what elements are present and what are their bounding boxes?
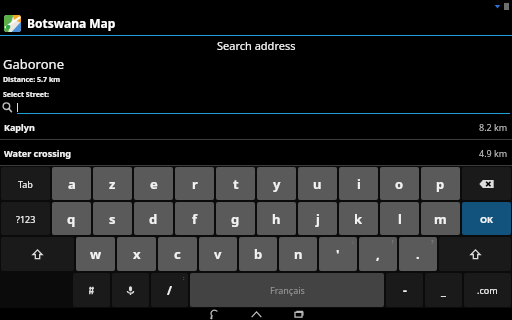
staticText: Water crossing [4, 147, 479, 159]
staticText: s [109, 210, 116, 228]
staticText: y [273, 175, 281, 193]
button[interactable]: Voice input [112, 273, 149, 307]
staticText: : [352, 238, 354, 246]
staticText: f [192, 210, 198, 228]
button[interactable]: l [380, 202, 419, 235]
staticText: ?123 [16, 213, 36, 225]
staticText: Search address [217, 38, 296, 53]
staticText: b [254, 245, 263, 263]
button[interactable]: m [421, 202, 460, 235]
button[interactable]: .com [464, 273, 511, 307]
staticText: Select Street: [3, 90, 50, 100]
button[interactable]: . [399, 237, 437, 271]
button[interactable]: Home [248, 308, 264, 320]
staticText: k [354, 210, 363, 228]
staticText: a [68, 175, 76, 193]
staticText: u [313, 175, 322, 193]
button[interactable]: Recent apps [290, 308, 306, 320]
staticText: c [174, 245, 181, 263]
staticText: , [376, 245, 380, 263]
button[interactable]: ' [319, 237, 357, 271]
staticText: 4.9 km [479, 147, 508, 159]
staticText: . [416, 245, 420, 263]
button[interactable]: r [175, 167, 214, 200]
button[interactable]: e [134, 167, 173, 200]
staticText: z [109, 175, 116, 193]
staticText: ? [431, 238, 434, 246]
staticText: j [316, 210, 320, 228]
staticText: e [150, 175, 158, 193]
button[interactable]: s [93, 202, 132, 235]
staticText: w [90, 245, 102, 263]
button[interactable]: p [421, 167, 460, 200]
button[interactable]: c [158, 237, 197, 271]
staticText: g [231, 210, 240, 228]
button[interactable]: Shift [439, 237, 511, 271]
staticText: d [149, 210, 158, 228]
button[interactable]: Backspace [462, 167, 511, 200]
button[interactable]: / [151, 273, 188, 307]
button[interactable]: h [257, 202, 296, 235]
staticText: i [357, 175, 361, 193]
staticText: .com [477, 284, 498, 296]
button[interactable]: a [52, 167, 91, 200]
button[interactable]: Back [206, 308, 222, 320]
button[interactable]: j [298, 202, 337, 235]
button[interactable]: q [52, 202, 91, 235]
button[interactable]: Water crossing [0, 140, 512, 165]
staticText: v [214, 245, 222, 263]
staticText: ' [336, 245, 340, 263]
staticText: n [294, 245, 303, 263]
staticText: Français [270, 284, 305, 296]
button[interactable]: n [279, 237, 317, 271]
button[interactable]: f [175, 202, 214, 235]
staticText: h [272, 210, 281, 228]
staticText: Gaborone [3, 55, 64, 73]
staticText: ! [392, 238, 394, 246]
button[interactable]: Shift [1, 237, 74, 271]
staticText: x [133, 245, 141, 263]
staticText: : [183, 274, 185, 282]
staticText: / [167, 282, 172, 298]
button[interactable]: Tab [1, 167, 50, 200]
staticText: Kaplyn [4, 121, 479, 133]
button[interactable]: _ [425, 273, 462, 307]
button[interactable]: v [199, 237, 237, 271]
button[interactable]: Français [190, 273, 384, 307]
staticText: p [436, 175, 445, 193]
button[interactable]: ?123 [1, 202, 50, 235]
button[interactable]: OK [462, 202, 511, 235]
button[interactable]: y [257, 167, 296, 200]
staticText: r [192, 175, 198, 193]
staticText: 8.2 km [479, 121, 508, 133]
staticText: m [434, 210, 447, 228]
staticText: - [403, 282, 407, 298]
button[interactable]: , [359, 237, 397, 271]
staticText: Distance: 5.7 km [3, 75, 61, 85]
button[interactable]: x [117, 237, 156, 271]
button[interactable]: z [93, 167, 132, 200]
button[interactable]: - [386, 273, 423, 307]
staticText: o [395, 175, 404, 193]
staticText: l [398, 210, 402, 228]
button[interactable]: w [76, 237, 115, 271]
button[interactable]: Switch keyboard [73, 273, 110, 307]
staticText: OK [480, 213, 494, 225]
staticText: _ [441, 282, 446, 298]
staticText: Botswana Map [27, 15, 116, 31]
staticText: t [233, 175, 239, 193]
button[interactable]: i [339, 167, 378, 200]
button[interactable]: d [134, 202, 173, 235]
button[interactable]: Kaplyn [0, 114, 512, 139]
staticText: Tab [18, 178, 33, 190]
button[interactable]: b [239, 237, 277, 271]
button[interactable]: k [339, 202, 378, 235]
button[interactable]: o [380, 167, 419, 200]
button[interactable]: u [298, 167, 337, 200]
button[interactable]: g [216, 202, 255, 235]
button[interactable]: t [216, 167, 255, 200]
staticText: q [67, 210, 76, 228]
